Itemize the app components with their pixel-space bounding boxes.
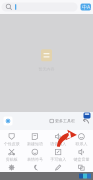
button[interactable]: 夜间模式 [23, 163, 46, 178]
button[interactable]: 剪贴板 [0, 147, 23, 163]
staticText: 新建短语 [27, 141, 43, 146]
button[interactable]: 手写输入 [46, 147, 70, 163]
staticText: 翻译 [77, 172, 85, 177]
button[interactable]: 手写 [46, 163, 70, 178]
staticText: 剪贴板 [6, 157, 18, 162]
staticText: 个性皮肤 [4, 141, 20, 146]
staticText: 更多工具栏 [55, 118, 75, 123]
button[interactable]: Undo [81, 116, 90, 125]
button[interactable]: 新建短语 [23, 132, 46, 147]
button[interactable]: 个性皮肤 [0, 132, 23, 147]
button[interactable]: 中A [80, 3, 91, 10]
staticText: 键盘音量 [73, 157, 89, 162]
button[interactable]: 更多工具栏 [50, 118, 75, 123]
button[interactable]: 联系人 [70, 132, 93, 147]
staticText: 中A [82, 3, 90, 11]
button[interactable]: Keyboard settings [3, 116, 12, 125]
staticText: 语音输入 [50, 141, 66, 146]
staticText: 联系人 [75, 141, 87, 146]
button[interactable]: 键盘设置 [0, 163, 23, 178]
staticText: 表情符号 [27, 157, 43, 162]
button[interactable]: 表情符号 [23, 147, 46, 163]
staticText: 暂无内容 [38, 67, 54, 72]
button[interactable]: 翻译 [70, 163, 93, 178]
staticText: 手写输入 [50, 157, 66, 162]
button[interactable]: 语音输入 [46, 132, 70, 147]
button[interactable]: 键盘音量 [70, 147, 93, 163]
